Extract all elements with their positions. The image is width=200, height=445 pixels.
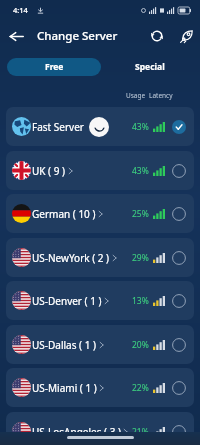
- button[interactable]: German ( 10 ): [6, 194, 194, 233]
- staticText: 21%: [132, 426, 149, 432]
- button[interactable]: Special: [103, 58, 197, 76]
- staticText: US-Miami ( 1 ): [32, 381, 97, 395]
- staticText: US-Dallas ( 1 ): [32, 338, 97, 352]
- staticText: 4:14: [13, 5, 28, 15]
- staticText: 25%: [132, 208, 149, 220]
- staticText: US-Denver ( 1 ): [32, 294, 102, 308]
- button[interactable]: Refresh: [144, 23, 170, 49]
- staticText: Latency: [149, 91, 173, 100]
- staticText: UK ( 9 ): [32, 164, 66, 178]
- staticText: 29%: [132, 252, 149, 264]
- button[interactable]: Boost: [173, 23, 199, 49]
- staticText: 43%: [132, 121, 149, 133]
- staticText: US-LosAngeles ( 3 ): [32, 425, 121, 432]
- staticText: 43%: [132, 165, 149, 177]
- staticText: Fast Server: [32, 120, 84, 134]
- staticText: US-NewYork ( 2 ): [32, 251, 110, 265]
- button[interactable]: US-LosAngeles ( 3 ): [6, 412, 194, 432]
- staticText: German ( 10 ): [32, 207, 96, 221]
- staticText: Special: [135, 61, 165, 73]
- button[interactable]: Fast Server: [6, 107, 194, 146]
- staticText: Change Server: [37, 28, 118, 44]
- button[interactable]: UK ( 9 ): [6, 151, 194, 190]
- button[interactable]: Back: [3, 23, 29, 49]
- staticText: Usage: [126, 91, 146, 100]
- button[interactable]: US-Dallas ( 1 ): [6, 325, 194, 364]
- button[interactable]: US-Denver ( 1 ): [6, 281, 194, 320]
- button[interactable]: Free: [7, 58, 101, 76]
- staticText: Free: [45, 61, 64, 73]
- button[interactable]: US-Miami ( 1 ): [6, 368, 194, 407]
- button[interactable]: US-NewYork ( 2 ): [6, 238, 194, 277]
- staticText: 22%: [132, 382, 149, 394]
- staticText: 20%: [132, 339, 149, 351]
- staticText: 13%: [132, 295, 149, 307]
